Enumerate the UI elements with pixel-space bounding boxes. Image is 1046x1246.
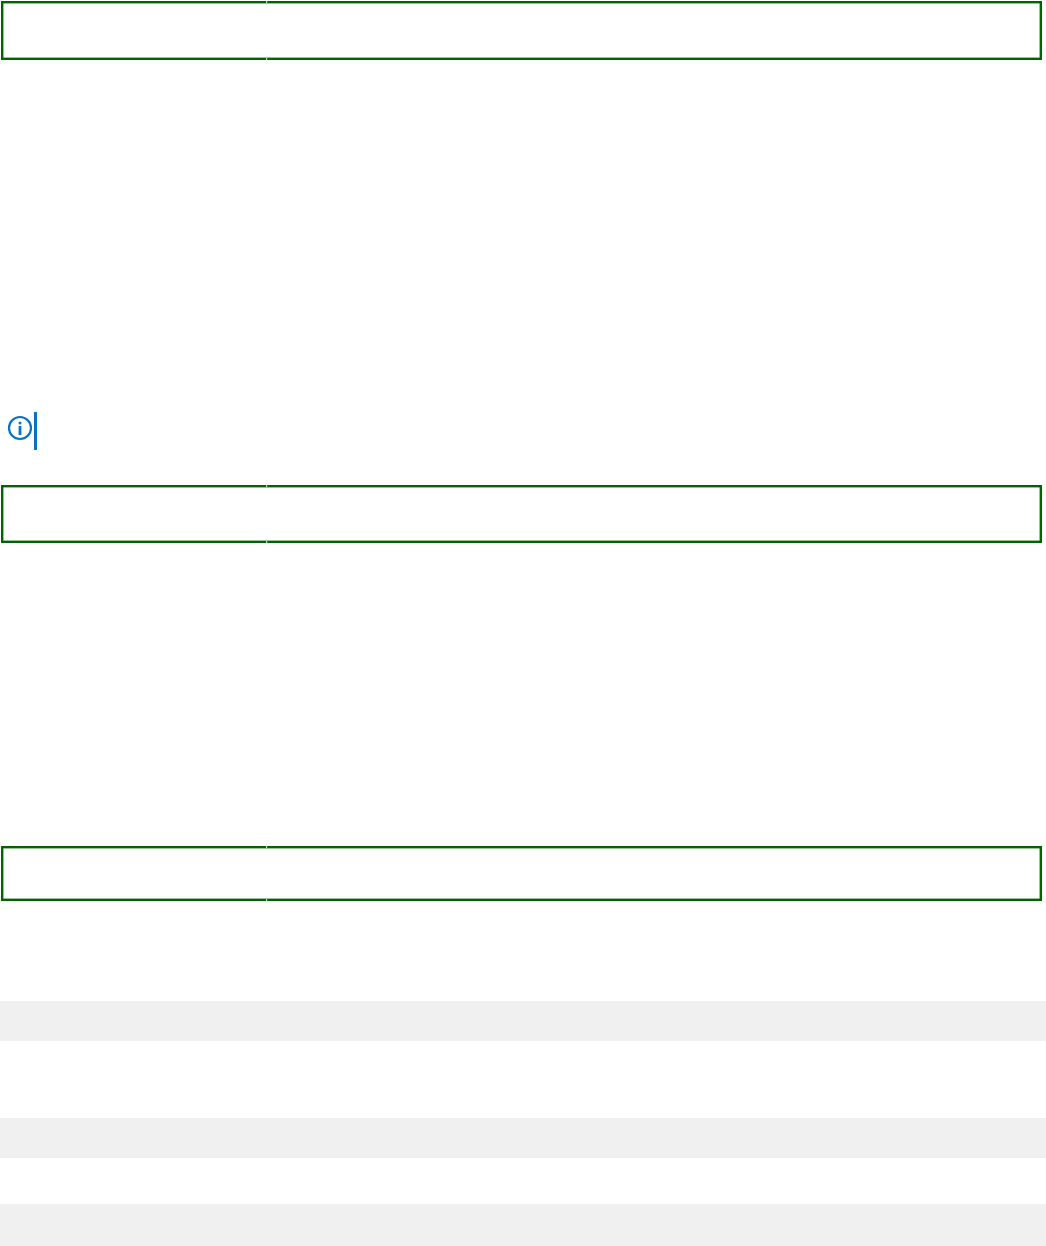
button[interactable] bbox=[1, 485, 1042, 543]
button[interactable]: Information bbox=[4, 408, 44, 456]
button[interactable] bbox=[1, 1, 1042, 60]
button[interactable] bbox=[1, 846, 1042, 901]
